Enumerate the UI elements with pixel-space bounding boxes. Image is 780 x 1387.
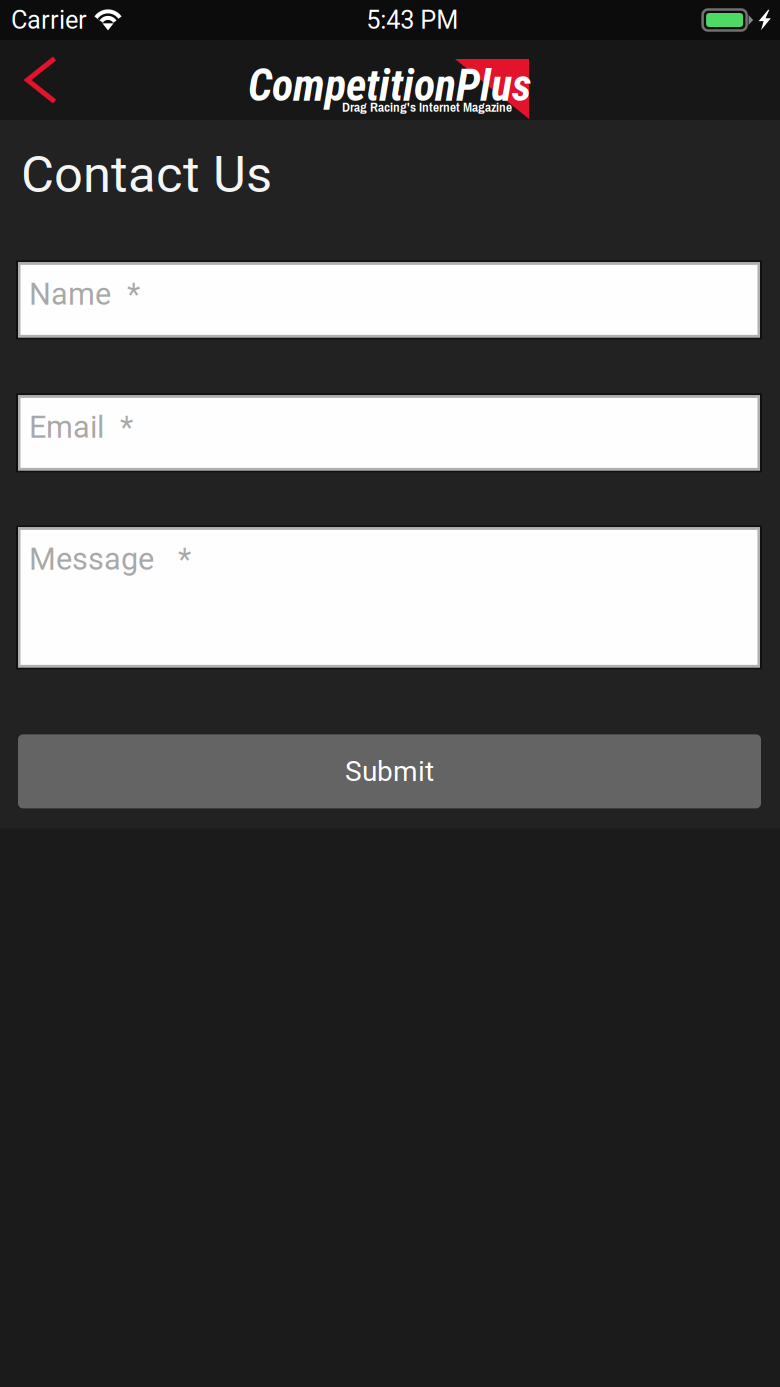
staticText: Message * <box>29 541 191 577</box>
staticText: Name * <box>29 276 140 312</box>
staticText: Carrier <box>11 5 87 35</box>
staticText: Submit <box>345 755 434 788</box>
button[interactable]: Name * <box>16 260 762 339</box>
staticText: Contact Us <box>21 145 272 204</box>
button[interactable]: Submit <box>18 734 761 808</box>
staticText: Drag Racing's Internet Magazine <box>342 98 512 116</box>
button[interactable]: Back <box>0 40 96 120</box>
staticText: 5:43 PM <box>366 5 458 35</box>
staticText: CompetitionPlus <box>248 60 531 112</box>
button[interactable]: Email * <box>16 393 762 472</box>
button[interactable]: Message * <box>16 525 762 669</box>
staticText: Email * <box>29 409 133 445</box>
